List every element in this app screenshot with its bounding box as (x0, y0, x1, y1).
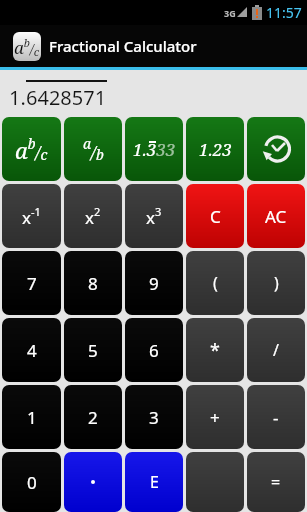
staticText: x-1 (22, 204, 41, 229)
staticText: 3G (224, 7, 236, 19)
staticText: 1. (9, 84, 26, 111)
button[interactable]: 1.23 (186, 117, 244, 181)
button[interactable]: x-1 (2, 184, 61, 248)
staticText: / (273, 339, 279, 361)
button[interactable]: / (247, 318, 305, 382)
staticText: 8 (88, 272, 98, 295)
button[interactable]: AC (247, 184, 305, 248)
button[interactable]: 1.333 (125, 117, 183, 181)
button[interactable]: C (186, 184, 244, 248)
staticText: x3 (146, 204, 162, 229)
button[interactable]: ab/c (2, 117, 61, 181)
staticText: * (210, 338, 220, 363)
staticText: 0 (27, 471, 37, 494)
button[interactable]: + (186, 385, 244, 449)
staticText: Fractional Calculator (49, 36, 197, 56)
button[interactable]: 3 (125, 385, 183, 449)
staticText: 4 (27, 339, 37, 362)
staticText: ) (274, 272, 279, 294)
staticText: AC (265, 205, 287, 228)
button[interactable]: - (247, 385, 305, 449)
staticText: 5 (88, 339, 98, 362)
button[interactable]: 9 (125, 251, 183, 315)
staticText: 6428571 (26, 84, 107, 111)
staticText: ( (213, 272, 218, 294)
button[interactable]: ) (247, 251, 305, 315)
staticText: C (210, 205, 221, 228)
button[interactable] (186, 452, 244, 512)
button[interactable]: ( (186, 251, 244, 315)
staticText: 9 (149, 272, 159, 295)
button[interactable]: 7 (2, 251, 61, 315)
staticText: E (150, 471, 159, 493)
staticText: 6 (149, 339, 159, 362)
button[interactable]: 8 (64, 251, 122, 315)
staticText: + (210, 406, 220, 429)
staticText: - (273, 406, 279, 429)
staticText: 11:57 (266, 3, 302, 22)
staticText: 1.333 (133, 138, 176, 161)
button[interactable]: * (186, 318, 244, 382)
staticText: 1 (27, 406, 37, 429)
button[interactable]: = (247, 452, 305, 512)
button[interactable]: x2 (64, 184, 122, 248)
button[interactable] (247, 117, 305, 181)
button[interactable]: x3 (125, 184, 183, 248)
button[interactable]: 2 (64, 385, 122, 449)
staticText: x2 (85, 204, 101, 229)
button[interactable]: 4 (2, 318, 61, 382)
button[interactable]: E (125, 452, 183, 512)
staticText: 7 (27, 272, 37, 295)
staticText: a/b (83, 134, 104, 164)
staticText: = (271, 471, 281, 493)
staticText: ab/c (14, 35, 40, 59)
button[interactable]: a/b (64, 117, 122, 181)
button[interactable] (64, 452, 122, 512)
button[interactable]: 0 (2, 452, 61, 512)
staticText: ab/c (15, 134, 48, 165)
staticText: 2 (88, 406, 98, 429)
button[interactable]: 1 (2, 385, 61, 449)
button[interactable]: 6 (125, 318, 183, 382)
button[interactable]: 5 (64, 318, 122, 382)
staticText: 1.23 (199, 138, 232, 161)
staticText: 3 (149, 406, 159, 429)
